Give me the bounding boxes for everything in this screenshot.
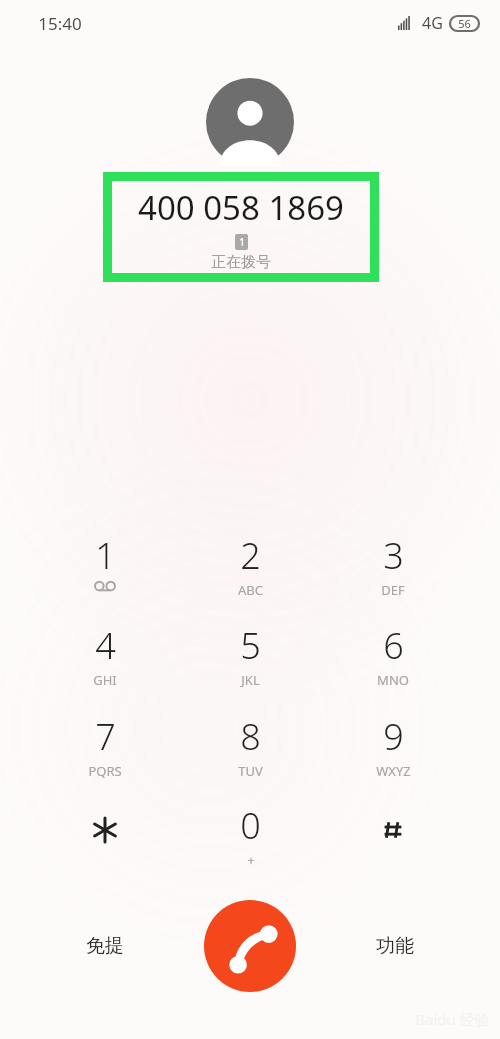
button[interactable]: 9 [333,712,453,796]
staticText: 功能 [376,934,414,958]
staticText: TUV [238,762,263,780]
staticText: 7 [95,712,116,761]
button[interactable]: 6 [333,621,453,705]
staticText: 0 [240,801,261,850]
staticText: 3 [383,531,404,580]
staticText: 400 058 1869 [138,185,344,230]
button[interactable]: 0 [190,801,310,885]
staticText: MNO [377,671,409,689]
staticText: 4 [95,621,116,670]
staticText: 5 [240,621,261,670]
staticText: 6 [383,621,404,670]
button[interactable]: 1 [45,531,165,615]
staticText: GHI [93,671,117,689]
staticText: 正在拨号 [211,253,271,272]
staticText: 2 [240,531,261,580]
staticText: 4G [422,12,443,34]
button[interactable]: 3 [333,531,453,615]
staticText: WXYZ [376,762,411,780]
staticText: + [247,851,255,869]
staticText: DEF [381,581,405,599]
button[interactable] [45,801,165,885]
button[interactable]: 免提 [65,916,145,976]
staticText: PQRS [88,762,122,780]
button[interactable]: 7 [45,712,165,796]
staticText: JKL [241,671,260,689]
button[interactable]: 4 [45,621,165,705]
button[interactable]: 5 [190,621,310,705]
button[interactable]: 8 [190,712,310,796]
staticText: 8 [240,712,261,761]
staticText: 免提 [86,934,124,958]
staticText: 1 [95,531,116,580]
button[interactable]: 功能 [355,916,435,976]
staticText: 15:40 [38,12,82,35]
staticText: Baidu 经验 [415,1009,490,1029]
staticText: 9 [383,712,404,761]
button[interactable] [333,801,453,885]
button[interactable]: 2 [190,531,310,615]
staticText: ABC [238,581,263,599]
staticText: 56 [458,16,471,31]
staticText: 1 [239,235,245,249]
button[interactable]: End call [204,900,296,992]
